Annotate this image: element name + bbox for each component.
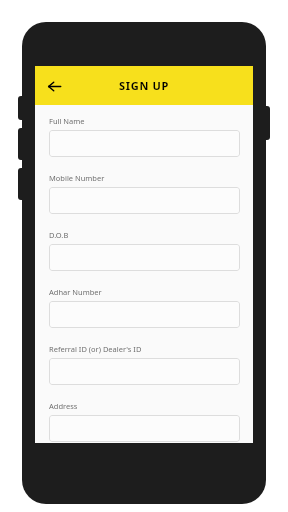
button[interactable] — [49, 301, 240, 328]
staticText: Referral ID (or) Dealer's ID — [49, 344, 142, 354]
button[interactable] — [49, 415, 240, 442]
staticText: Address — [49, 401, 78, 411]
button[interactable] — [49, 187, 240, 214]
staticText: D.O.B — [49, 230, 69, 240]
staticText: SIGN UP — [119, 78, 170, 93]
button[interactable] — [49, 244, 240, 271]
staticText: Full Name — [49, 116, 85, 126]
button[interactable]: Back — [43, 75, 65, 97]
button[interactable] — [49, 130, 240, 157]
staticText: Adhar Number — [49, 287, 102, 297]
button[interactable] — [49, 358, 240, 385]
staticText: Mobile Number — [49, 173, 105, 183]
